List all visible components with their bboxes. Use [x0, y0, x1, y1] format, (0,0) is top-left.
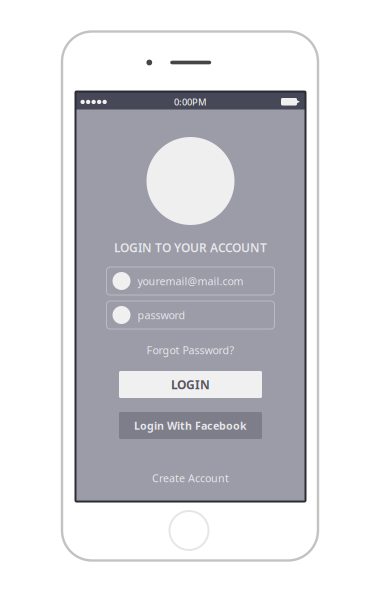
staticText: Login With Facebook: [134, 418, 247, 433]
button[interactable]: Login With Facebook: [119, 412, 262, 439]
button[interactable]: Create Account: [130, 471, 250, 485]
staticText: Forgot Password?: [146, 343, 234, 357]
staticText: LOGIN: [171, 376, 210, 392]
staticText: 0:00PM: [174, 96, 207, 108]
button[interactable]: LOGIN: [119, 371, 262, 398]
button[interactable]: youremail@mail.com: [106, 267, 274, 295]
staticText: LOGIN TO YOUR ACCOUNT: [114, 239, 267, 255]
staticText: Create Account: [152, 471, 229, 485]
staticText: youremail@mail.com: [137, 274, 243, 288]
button[interactable]: password: [106, 301, 274, 329]
staticText: password: [137, 308, 185, 322]
button[interactable]: Forgot Password?: [130, 343, 250, 357]
